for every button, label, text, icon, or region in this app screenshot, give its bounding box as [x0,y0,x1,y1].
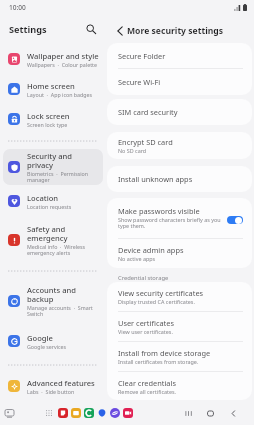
staticText: View security certificates [118,288,204,298]
button[interactable]: Recents [181,406,195,420]
staticText: Accounts and backup [27,285,99,304]
button[interactable]: Install from device storage [107,342,252,371]
button[interactable]: Back [226,406,240,420]
button[interactable]: Home screen [3,75,103,103]
staticText: Advanced features [27,378,95,388]
staticText: Home screen [27,81,75,91]
staticText: Location [27,193,59,203]
button[interactable]: Secure Wi-Fi [107,69,252,95]
staticText: Labs · Side button [27,388,75,395]
staticText: Install certificates from storage. [118,358,199,365]
button[interactable]: Make passwords visible [107,198,252,238]
staticText: SIM card security [118,107,178,117]
staticText: Settings [9,23,47,36]
button[interactable]: Make passwords visible [227,216,243,224]
staticText: Location requests [27,203,72,210]
staticText: Remove all certificates. [118,388,177,395]
staticText: Credential storage [118,274,252,282]
staticText: Device admin apps [118,245,184,255]
staticText: Install from device storage [118,348,211,358]
staticText: Secure Folder [118,51,166,61]
staticText: Medical info · Wireless emergency alerts [27,243,99,257]
staticText: More security settings [127,25,224,37]
button[interactable]: Search [82,20,100,38]
staticText: Lock screen [27,111,70,121]
button[interactable]: Clear credentials [107,372,252,400]
button[interactable]: Safety and emergency [3,217,103,263]
button[interactable]: chat [82,406,95,419]
button[interactable]: note [56,406,69,419]
button[interactable]: net [108,406,121,419]
staticText: User certificates [118,318,174,328]
staticText: Google [27,333,53,343]
staticText: Show password characters briefly as you … [118,216,223,230]
button[interactable]: User certificates [107,312,252,341]
button[interactable]: Encrypt SD card [107,132,252,159]
button[interactable]: View security certificates [107,282,252,311]
staticText: 10:00 [9,3,26,12]
staticText: Wallpapers · Colour palette [27,61,98,68]
button[interactable]: Advanced features [3,373,103,399]
staticText: Security and privacy [27,151,99,170]
button[interactable]: Wallpaper and style [3,45,103,73]
staticText: Biometrics · Permission manager [27,170,99,184]
button[interactable]: Security and privacy [3,149,103,185]
button[interactable]: Google [3,325,103,357]
button[interactable]: Home [203,406,217,420]
button[interactable]: SIM card security [107,99,252,125]
staticText: No active apps [118,255,156,262]
staticText: Secure Wi-Fi [118,77,161,87]
staticText: View user certificates. [118,328,173,335]
button[interactable]: Back [110,21,130,41]
staticText: No SD card [118,147,147,154]
button[interactable]: Accounts and backup [3,279,103,323]
button[interactable]: Show taskbar [2,406,16,420]
staticText: Encrypt SD card [118,137,173,147]
button[interactable]: All apps [43,407,55,419]
staticText: Safety and emergency [27,224,99,243]
button[interactable]: cam [121,406,134,419]
button[interactable]: Location [3,187,103,215]
button[interactable]: Install unknown apps [107,166,252,192]
button[interactable]: Device admin apps [107,239,252,268]
staticText: Layout · App icon badges [27,91,93,98]
button[interactable]: folder [69,406,82,419]
staticText: Wallpaper and style [27,51,99,61]
staticText: Install unknown apps [118,174,193,184]
staticText: Clear credentials [118,378,176,388]
staticText: Manage accounts · Smart Switch [27,304,99,318]
staticText: Display trusted CA certificates. [118,298,195,305]
button[interactable]: Lock screen [3,105,103,133]
button[interactable]: msg [95,406,108,419]
staticText: Screen lock type [27,121,68,128]
staticText: Make passwords visible [118,206,200,216]
staticText: Google services [27,343,67,350]
button[interactable]: Secure Folder [107,43,252,68]
